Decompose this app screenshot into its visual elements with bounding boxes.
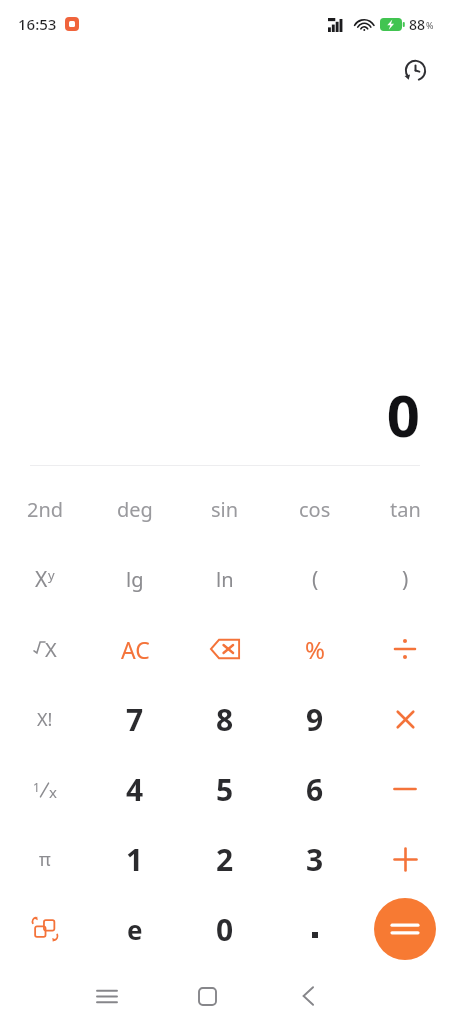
staticText: AC [121,634,150,665]
staticText: π [39,847,51,872]
button[interactable]: Equals [360,894,450,964]
button[interactable] [360,824,450,894]
button[interactable]: lg [90,544,180,614]
button[interactable]: 7 [90,684,180,754]
button[interactable]: % [270,614,360,684]
staticText: % [426,19,434,31]
staticText: 5 [216,769,234,810]
button[interactable]: Back [258,968,359,1024]
button[interactable]: ) [360,544,450,614]
staticText: deg [117,496,153,523]
button[interactable]: Home [157,968,258,1024]
button[interactable]: sin [180,474,270,544]
staticText: 88 [409,15,426,34]
button[interactable]: X [0,614,90,684]
staticText: X [45,636,57,663]
staticText: 8 [216,699,234,740]
button[interactable]: 5 [180,754,270,824]
staticText: 2nd [27,496,64,523]
staticText: 0 [386,375,420,454]
staticText: x [49,782,57,802]
staticText: % [305,633,325,666]
staticText: y [48,566,55,584]
button[interactable]: ( [270,544,360,614]
staticText: ) [402,565,409,594]
button[interactable] [270,894,360,964]
staticText: 2 [216,839,234,880]
button[interactable]: 4 [90,754,180,824]
button[interactable]: 9 [270,684,360,754]
button[interactable]: 3 [270,824,360,894]
staticText: 7 [126,699,144,740]
button[interactable]: π [0,824,90,894]
button[interactable]: 1 [90,824,180,894]
button[interactable]: 2 [180,824,270,894]
button[interactable]: Recents [56,968,157,1024]
button[interactable]: Unit converter [0,894,90,964]
button[interactable] [360,614,450,684]
staticText: cos [299,496,331,523]
staticText: X! [37,707,53,732]
button[interactable]: deg [90,474,180,544]
button[interactable] [360,754,450,824]
button[interactable]: History [394,49,436,91]
button[interactable]: cos [270,474,360,544]
button[interactable]: ln [180,544,270,614]
button[interactable]: 2nd [0,474,90,544]
staticText: lg [126,566,144,593]
button[interactable]: 6 [270,754,360,824]
staticText: 3 [306,839,324,880]
button[interactable]: tan [360,474,450,544]
button[interactable]: 0 [180,894,270,964]
staticText: 1 [33,779,40,795]
button[interactable]: 1 [0,754,90,824]
button[interactable]: AC [90,614,180,684]
staticText: 1 [126,839,144,880]
staticText: 9 [306,699,324,740]
button[interactable]: X [0,544,90,614]
staticText: ln [216,566,234,593]
button[interactable] [360,684,450,754]
button[interactable]: 8 [180,684,270,754]
button[interactable]: e [90,894,180,964]
staticText: 4 [126,769,144,810]
staticText: tan [390,496,421,523]
staticText: 6 [306,769,324,810]
staticText: ( [312,565,319,594]
staticText: sin [211,496,239,523]
button[interactable]: Backspace [180,614,270,684]
button[interactable]: X! [0,684,90,754]
staticText: e [127,912,143,947]
staticText: X [35,565,48,594]
staticText: 16:53 [18,14,57,34]
staticText: 0 [216,909,234,950]
